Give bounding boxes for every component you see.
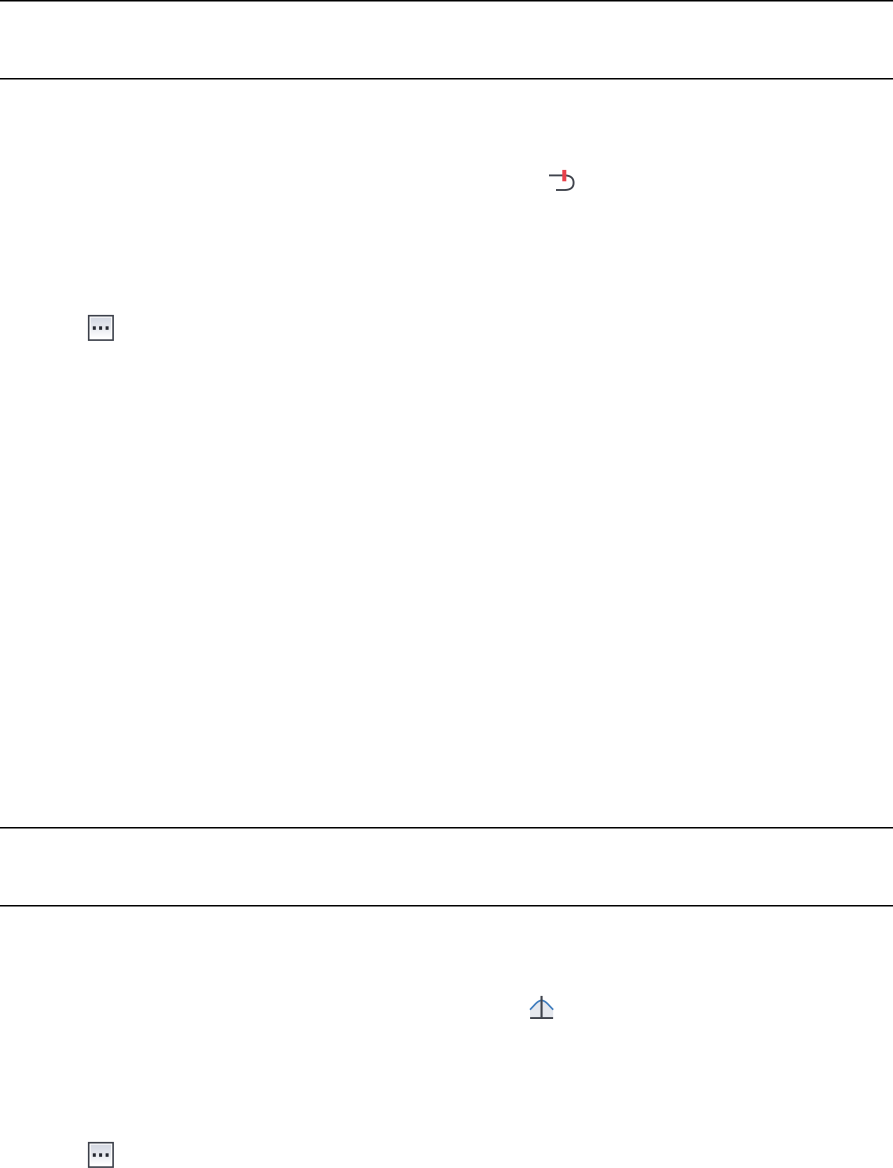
button[interactable]: Campsite [530, 996, 553, 1019]
staticText: Packed the stove and the spare poles las… [40, 182, 755, 224]
staticText: Pitch three, right by the water. Map bel… [40, 1009, 673, 1051]
button[interactable]: More [88, 315, 114, 341]
button[interactable]: More [88, 1142, 114, 1168]
button[interactable]: Reply [549, 170, 575, 191]
